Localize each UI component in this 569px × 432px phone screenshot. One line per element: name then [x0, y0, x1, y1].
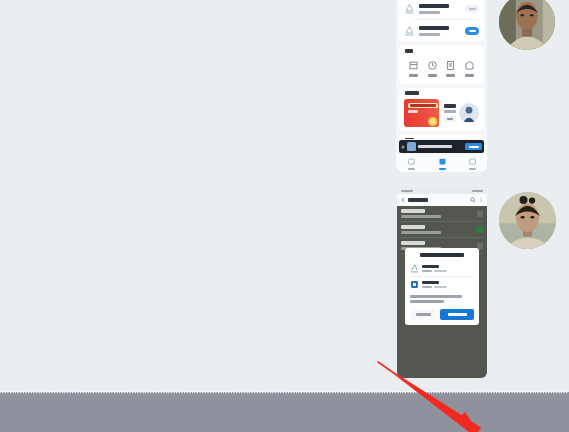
- button[interactable]: Back: [400, 197, 406, 203]
- button[interactable]: [443, 58, 458, 79]
- button[interactable]: [444, 99, 479, 127]
- button[interactable]: [406, 58, 421, 79]
- button[interactable]: Profile: [457, 154, 487, 172]
- button[interactable]: [404, 99, 439, 127]
- button[interactable]: [399, 20, 484, 41]
- button[interactable]: [410, 309, 436, 320]
- button[interactable]: [399, 140, 484, 153]
- button[interactable]: [462, 58, 477, 79]
- button[interactable]: Services: [427, 154, 457, 172]
- button[interactable]: [465, 27, 479, 35]
- button[interactable]: [465, 143, 482, 150]
- button[interactable]: [410, 279, 474, 290]
- button[interactable]: Profile photo: [499, 0, 555, 50]
- button[interactable]: Search: [470, 197, 476, 203]
- button[interactable]: More options: [478, 197, 484, 203]
- button[interactable]: [440, 309, 474, 320]
- button[interactable]: Profile photo: [499, 192, 556, 249]
- button[interactable]: [465, 5, 479, 13]
- button[interactable]: [399, 0, 484, 19]
- button[interactable]: [425, 58, 440, 79]
- button[interactable]: Home: [396, 154, 427, 172]
- button[interactable]: [410, 263, 474, 274]
